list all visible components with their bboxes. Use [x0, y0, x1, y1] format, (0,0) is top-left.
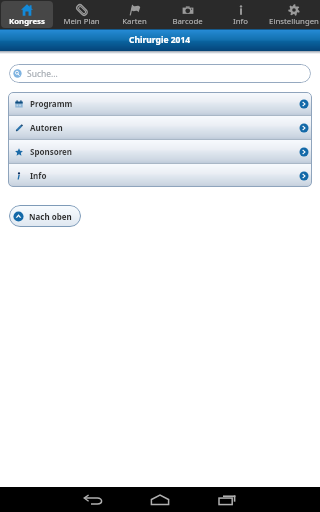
button[interactable]: Einstellungen	[268, 1, 319, 28]
staticText: Barcode	[172, 16, 203, 27]
staticText: Chirurgie 2014	[129, 34, 191, 46]
button[interactable]: Info	[8, 164, 312, 187]
staticText: Suche...	[27, 68, 58, 80]
button[interactable]: Kongress	[1, 1, 53, 28]
button[interactable]: Suche...	[9, 64, 311, 83]
staticText: Kongress	[9, 16, 45, 27]
staticText: Info	[233, 16, 248, 27]
button[interactable]: Karten	[109, 1, 160, 28]
button[interactable]: Info	[215, 1, 266, 28]
staticText: Autoren	[30, 122, 63, 133]
button[interactable]: Barcode	[162, 1, 213, 28]
staticText: Mein Plan	[63, 16, 100, 27]
staticText: Sponsoren	[30, 146, 73, 157]
button[interactable]: Nach oben	[9, 205, 81, 227]
staticText: Einstellungen	[269, 16, 319, 27]
staticText: Programm	[30, 98, 73, 109]
button[interactable]: Programm	[8, 92, 312, 115]
staticText: Info	[30, 170, 47, 181]
staticText: Nach oben	[29, 211, 72, 222]
staticText: Karten	[122, 16, 147, 27]
button[interactable]: Mein Plan	[55, 1, 107, 28]
button[interactable]: Back	[76, 487, 110, 512]
button[interactable]: Home	[143, 487, 177, 512]
button[interactable]: Sponsoren	[8, 140, 312, 163]
button[interactable]: Autoren	[8, 116, 312, 139]
button[interactable]: Recent apps	[210, 487, 244, 512]
